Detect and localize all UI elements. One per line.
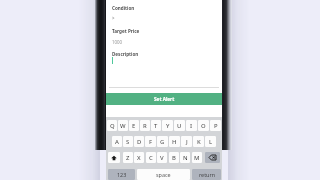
- button[interactable]: F: [145, 136, 156, 147]
- staticText: Condition: [112, 5, 135, 11]
- button[interactable]: space: [137, 169, 190, 180]
- staticText: P: [214, 122, 218, 130]
- button[interactable]: V: [157, 152, 167, 163]
- staticText: space: [156, 171, 171, 178]
- button[interactable]: G: [157, 136, 168, 147]
- button[interactable]: 123: [108, 169, 135, 180]
- staticText: return: [199, 171, 215, 178]
- staticText: Set Alert: [154, 96, 175, 102]
- staticText: X: [137, 154, 141, 162]
- staticText: E: [132, 122, 136, 130]
- staticText: T: [154, 122, 158, 130]
- button[interactable]: W: [118, 120, 128, 131]
- staticText: R: [143, 122, 147, 130]
- staticText: K: [197, 138, 201, 146]
- staticText: >: [112, 15, 115, 21]
- button[interactable]: P: [210, 120, 221, 131]
- staticText: B: [172, 154, 176, 162]
- button[interactable]: L: [205, 136, 216, 147]
- staticText: Y: [166, 122, 170, 130]
- button[interactable]: H: [169, 136, 180, 147]
- staticText: M: [194, 154, 200, 162]
- button[interactable]: Z: [123, 152, 133, 163]
- staticText: J: [186, 138, 188, 146]
- staticText: H: [172, 138, 177, 146]
- staticText: D: [137, 138, 142, 146]
- button[interactable]: I: [186, 120, 197, 131]
- staticText: Description: [112, 51, 139, 57]
- staticText: I: [190, 122, 193, 130]
- staticText: N: [183, 154, 188, 162]
- button[interactable]: N: [180, 152, 190, 163]
- staticText: Q: [110, 122, 115, 130]
- staticText: L: [209, 138, 213, 146]
- button[interactable]: O: [198, 120, 209, 131]
- button[interactable]: D: [134, 136, 144, 147]
- button[interactable]: Set Alert: [106, 93, 222, 105]
- button[interactable]: M: [192, 152, 202, 163]
- staticText: 1000: [112, 39, 123, 45]
- button[interactable]: return: [192, 169, 221, 180]
- button[interactable]: Backspace: [205, 152, 220, 163]
- staticText: S: [126, 138, 130, 146]
- staticText: V: [160, 154, 164, 162]
- staticText: W: [120, 122, 126, 130]
- button[interactable]: K: [193, 136, 204, 147]
- staticText: Target Price: [112, 28, 140, 34]
- button[interactable]: X: [134, 152, 144, 163]
- button[interactable]: B: [169, 152, 179, 163]
- button[interactable]: E: [129, 120, 139, 131]
- button[interactable]: T: [151, 120, 161, 131]
- button[interactable]: C: [146, 152, 156, 163]
- button[interactable]: Shift: [108, 152, 120, 163]
- button[interactable]: R: [140, 120, 150, 131]
- button[interactable]: J: [181, 136, 192, 147]
- staticText: Z: [126, 154, 130, 162]
- staticText: F: [149, 138, 153, 146]
- button[interactable]: A: [112, 136, 122, 147]
- staticText: 123: [117, 171, 127, 178]
- staticText: A: [115, 138, 119, 146]
- button[interactable]: U: [174, 120, 185, 131]
- staticText: C: [149, 154, 153, 162]
- button[interactable]: Y: [162, 120, 173, 131]
- button[interactable]: S: [123, 136, 133, 147]
- staticText: G: [160, 138, 165, 146]
- button[interactable]: Q: [107, 120, 117, 131]
- staticText: O: [201, 122, 206, 130]
- staticText: U: [177, 122, 182, 130]
